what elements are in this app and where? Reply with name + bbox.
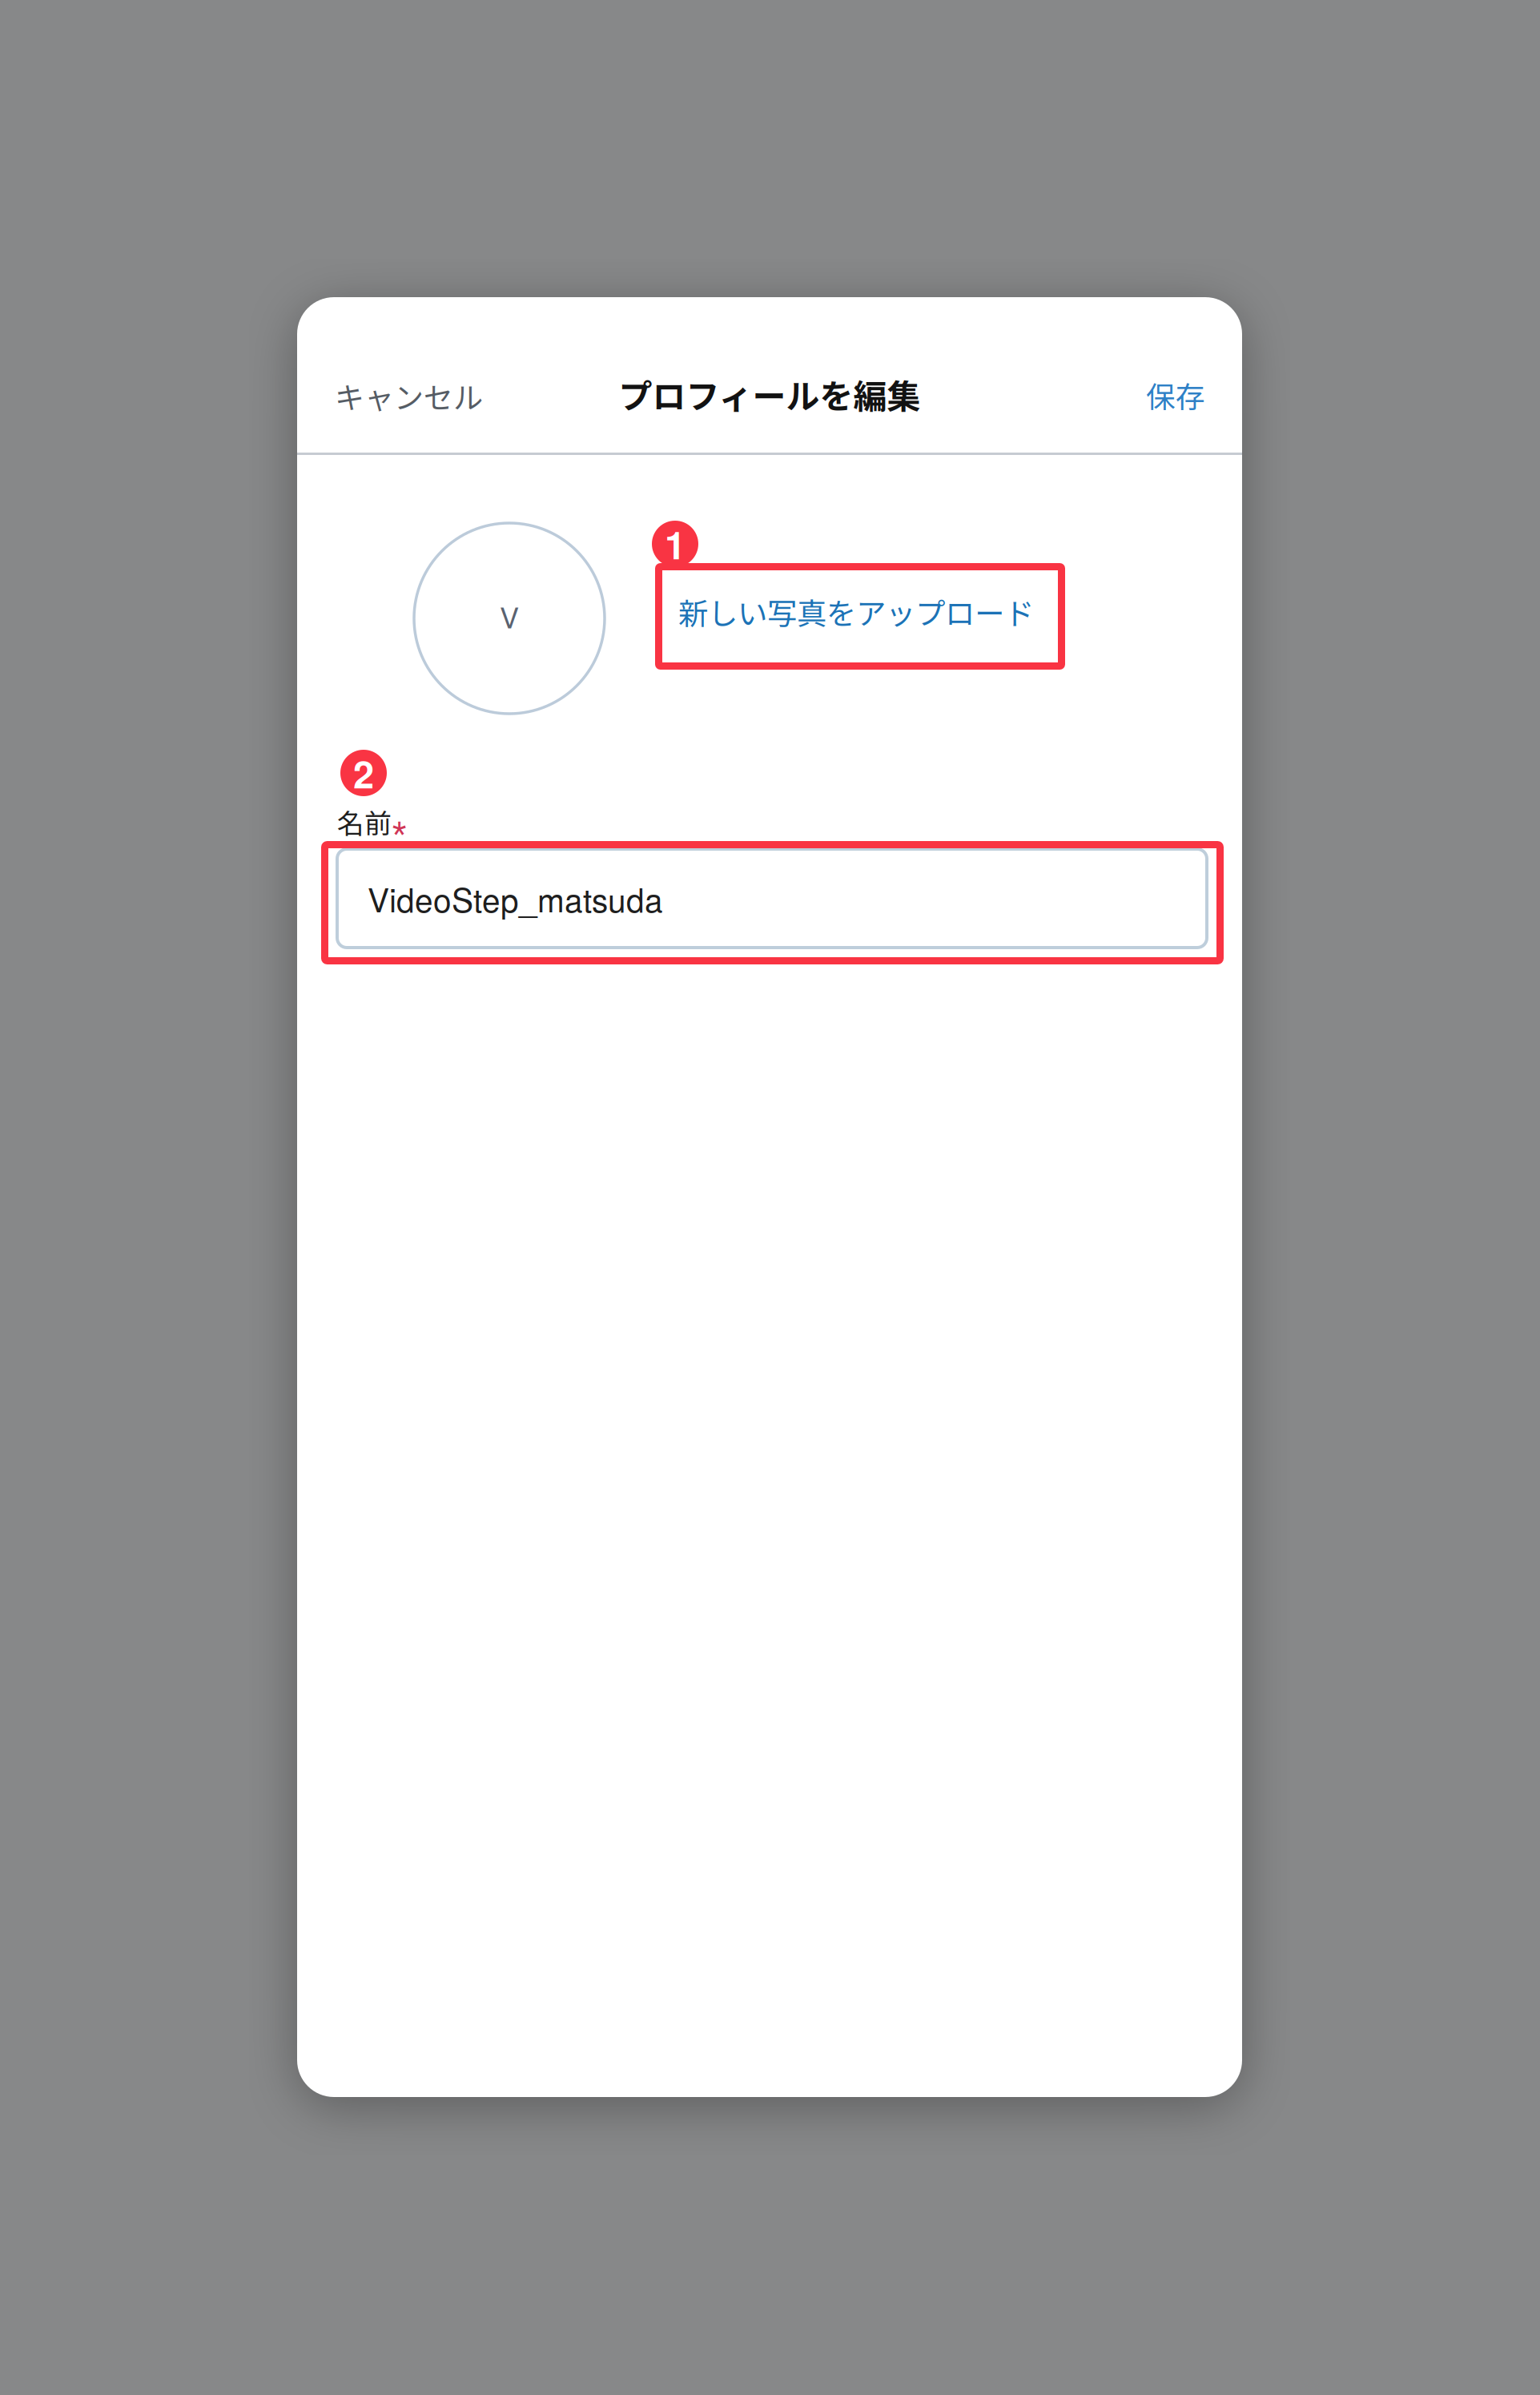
staticText: VideoStep_matsuda bbox=[368, 875, 663, 922]
staticText: 新しい写真をアップロード bbox=[678, 590, 1034, 633]
staticText: プロフィールを編集 bbox=[619, 370, 921, 418]
button[interactable]: キャンセル bbox=[335, 348, 543, 444]
staticText: キャンセル bbox=[335, 374, 483, 417]
staticText: * bbox=[392, 815, 406, 853]
button[interactable]: Profile photo bbox=[414, 523, 605, 714]
button[interactable]: VideoStep_matsuda bbox=[337, 849, 1207, 948]
staticText: 保存 bbox=[1146, 374, 1205, 416]
staticText: 名前 bbox=[337, 802, 392, 842]
staticText: V bbox=[500, 595, 519, 637]
staticText: 1 bbox=[665, 517, 686, 571]
button[interactable]: 新しい写真をアップロード bbox=[653, 561, 1060, 662]
staticText: 2 bbox=[353, 746, 374, 800]
button[interactable]: 保存 bbox=[1093, 347, 1205, 443]
